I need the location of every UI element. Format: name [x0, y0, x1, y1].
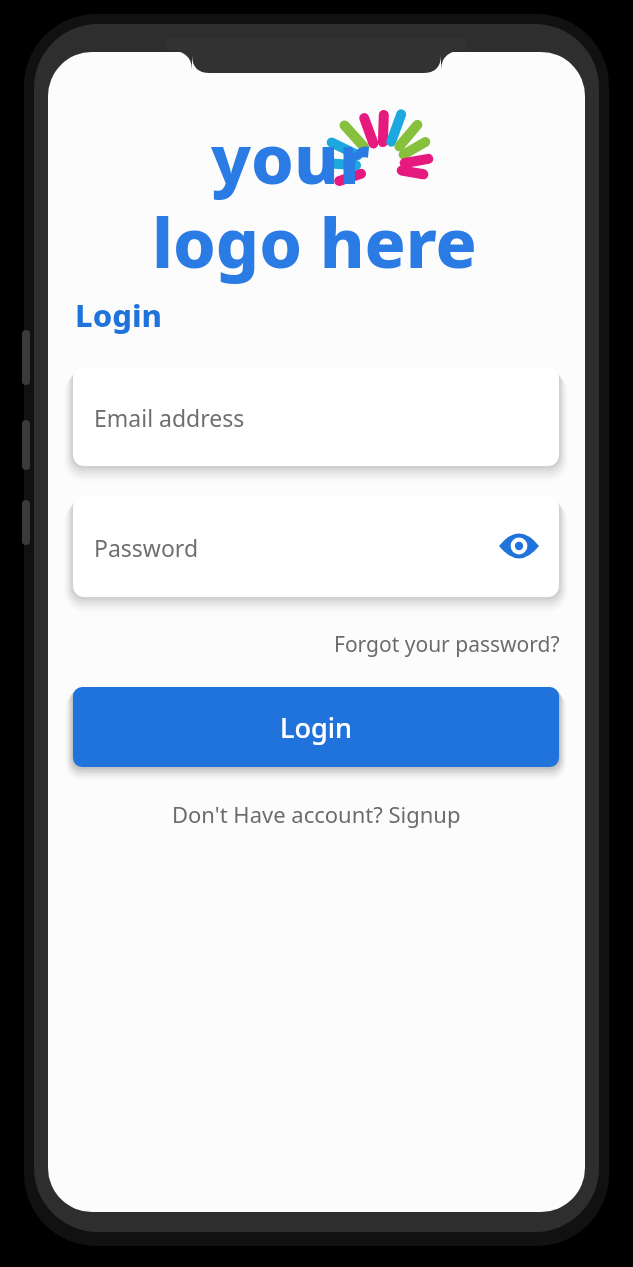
staticText: Don't Have account? Signup — [172, 799, 461, 829]
button[interactable]: Login — [73, 687, 559, 767]
button[interactable]: Password — [73, 497, 559, 597]
button[interactable]: Show password — [492, 519, 546, 573]
button[interactable]: Don't Have account? Signup — [120, 794, 513, 834]
staticText: your — [211, 111, 370, 204]
button[interactable]: Email address — [73, 368, 559, 466]
staticText: Password — [94, 532, 199, 563]
button[interactable]: Forgot your password? — [275, 625, 560, 663]
staticText: Email address — [94, 402, 245, 433]
staticText: logo here — [152, 195, 477, 288]
staticText: Login — [75, 294, 163, 336]
staticText: Login — [280, 709, 352, 746]
staticText: Forgot your password? — [334, 630, 560, 659]
